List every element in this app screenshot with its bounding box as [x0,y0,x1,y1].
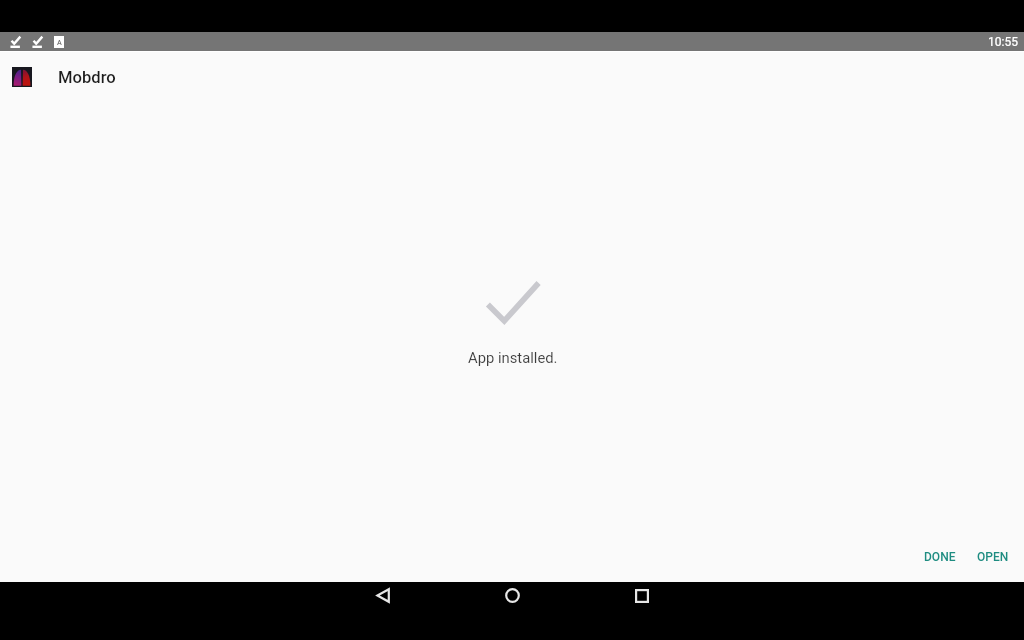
button[interactable]: Back [317,582,447,640]
button[interactable]: Home [447,582,577,640]
staticText: App installed. [468,349,558,366]
staticText: Mobdro [58,68,116,87]
staticText: A [57,38,62,46]
button[interactable]: OPEN [969,539,1017,575]
button[interactable]: DONE [916,539,964,575]
staticText: OPEN [977,550,1009,564]
staticText: 10:55 [988,35,1018,49]
staticText: DONE [924,550,956,564]
button[interactable]: Recents [577,582,707,640]
